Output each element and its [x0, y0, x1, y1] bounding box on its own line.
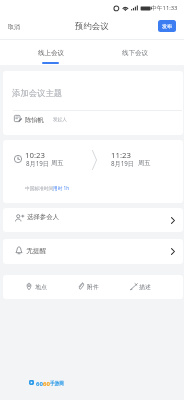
staticText: 周五 — [51, 159, 64, 167]
button[interactable] — [3, 140, 183, 180]
staticText: 选择参会人 — [27, 213, 59, 221]
staticText: 8月19日 — [26, 159, 49, 167]
staticText: 预约会议 — [75, 21, 109, 32]
staticText: 10:23 — [25, 150, 45, 161]
staticText: 添加会议主题 — [12, 88, 63, 99]
button[interactable] — [127, 275, 157, 299]
staticText: 60 — [43, 380, 50, 388]
button[interactable] — [158, 20, 176, 32]
button[interactable] — [75, 275, 105, 299]
button[interactable] — [3, 71, 183, 110]
staticText: 中午11:33 — [151, 4, 178, 12]
staticText: 周五 — [138, 159, 151, 167]
button[interactable] — [3, 110, 183, 134]
staticText: 60 — [36, 380, 43, 388]
staticText: 地点 — [35, 283, 47, 290]
button[interactable] — [93, 40, 177, 65]
staticText: 陈怡帆 — [25, 116, 44, 124]
staticText: 中国标准时间 — [25, 185, 54, 191]
staticText: 线上会议 — [38, 49, 64, 57]
staticText: 发布 — [162, 23, 172, 29]
staticText: 线下会议 — [122, 49, 148, 57]
staticText: 手游网 — [50, 381, 64, 387]
staticText: 无提醒 — [26, 247, 47, 255]
button[interactable] — [3, 208, 183, 232]
staticText: 11:23 — [111, 150, 131, 161]
button[interactable] — [1, 17, 27, 35]
button[interactable] — [23, 275, 53, 299]
staticText: 发起人 — [53, 117, 67, 123]
button[interactable] — [3, 239, 183, 264]
staticText: 8月19日 — [111, 159, 134, 167]
staticText: 附件 — [87, 283, 99, 290]
staticText: 描述 — [139, 283, 151, 290]
staticText: 用时 1h — [53, 185, 70, 191]
button[interactable] — [8, 40, 92, 65]
staticText: 取消 — [8, 23, 20, 31]
